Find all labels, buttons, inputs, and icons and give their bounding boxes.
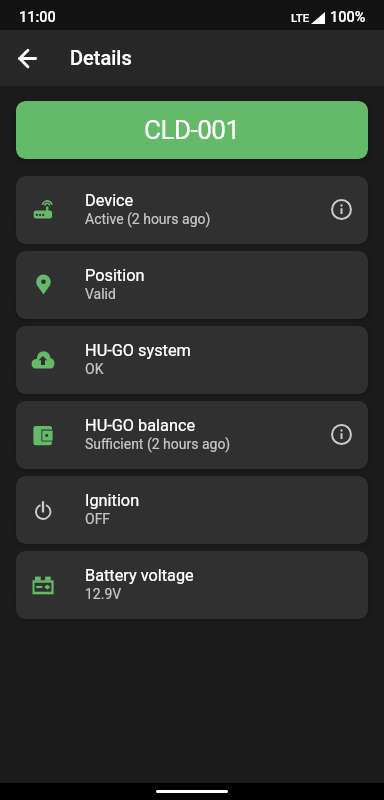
staticText: OK [85, 361, 104, 377]
staticText: 12.9V [85, 586, 122, 602]
button[interactable]: CLD-001 [16, 101, 368, 159]
staticText: Device [85, 191, 134, 210]
button[interactable]: Device [16, 176, 368, 244]
button[interactable]: Back [8, 39, 46, 77]
staticText: Valid [85, 286, 116, 302]
staticText: Position [85, 266, 145, 285]
staticText: 100% [330, 9, 366, 26]
staticText: Details [70, 46, 132, 69]
button[interactable]: Info [323, 416, 359, 452]
button[interactable]: Battery voltage [16, 551, 368, 619]
staticText: Active (2 hours ago) [85, 211, 211, 227]
staticText: Battery voltage [85, 566, 194, 585]
staticText: OFF [85, 511, 111, 527]
button[interactable]: Ignition [16, 476, 368, 544]
staticText: CLD-001 [144, 115, 240, 145]
staticText: Sufficient (2 hours ago) [85, 436, 231, 452]
staticText: HU-GO system [85, 341, 191, 360]
staticText: Ignition [85, 491, 140, 510]
button[interactable]: Position [16, 251, 368, 319]
staticText: 11:00 [19, 9, 56, 26]
button[interactable]: HU-GO system [16, 326, 368, 394]
staticText: LTE [291, 11, 310, 24]
staticText: HU-GO balance [85, 416, 196, 435]
button[interactable]: HU-GO balance [16, 401, 368, 469]
button[interactable]: Info [323, 191, 359, 227]
